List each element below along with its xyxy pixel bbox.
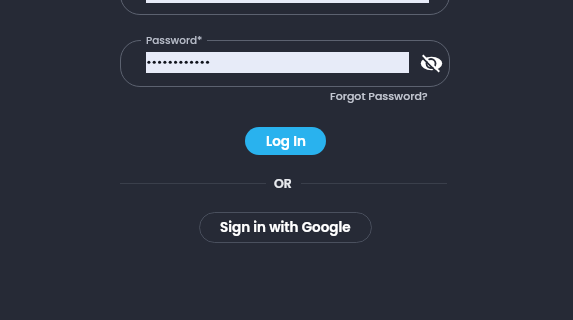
staticText: Password*	[146, 33, 203, 48]
staticText: OR	[274, 175, 292, 192]
button[interactable]	[421, 53, 442, 74]
staticText: Sign in with Google	[220, 218, 351, 237]
button[interactable]: Log In	[245, 127, 326, 155]
staticText: Log In	[266, 132, 306, 151]
button[interactable]: Forgot Password?	[330, 88, 428, 103]
button[interactable]: Sign in with Google	[199, 212, 372, 243]
button[interactable]	[120, 40, 450, 87]
